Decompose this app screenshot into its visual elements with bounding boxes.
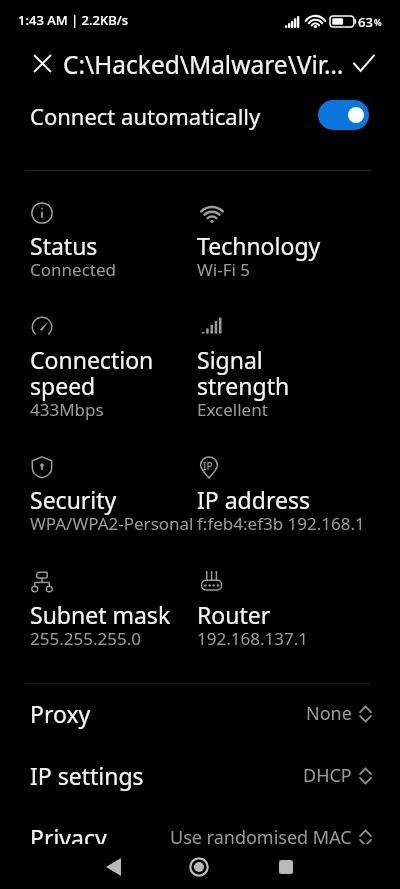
staticText: 255.255.255.0 (30, 627, 141, 650)
staticText: Connected (30, 258, 116, 281)
button[interactable]: Back (83, 844, 143, 889)
staticText: Wi-Fi 5 (197, 258, 251, 281)
staticText: strength (197, 370, 290, 401)
staticText: Signal (197, 344, 263, 375)
staticText: Connect automatically (30, 101, 261, 131)
staticText: Router (197, 599, 271, 630)
staticText: Excellent (197, 398, 268, 421)
staticText: Security (30, 484, 117, 515)
staticText: WPA/WPA2-Personal (30, 512, 194, 535)
staticText: None (306, 701, 352, 726)
staticText: IP (203, 459, 213, 473)
button[interactable]: IP settings (0, 744, 400, 806)
staticText: 1:43 AM | 2.2KB/s (18, 11, 129, 29)
button[interactable]: Privacy (0, 806, 400, 868)
button[interactable]: Save (347, 47, 379, 79)
staticText: Status (30, 230, 98, 261)
staticText: IP settings (30, 760, 144, 791)
staticText: 192.168.137.1 (197, 627, 308, 650)
staticText: 433Mbps (30, 398, 104, 421)
staticText: % (374, 16, 382, 28)
button[interactable]: Proxy (0, 682, 400, 744)
staticText: Subnet mask (30, 599, 171, 630)
staticText: Privacy (30, 822, 107, 853)
staticText: f:feb4:ef3b 192.168.1 (197, 512, 365, 535)
staticText: Technology (197, 230, 321, 261)
staticText: Proxy (30, 698, 91, 729)
staticText: DHCP (303, 763, 352, 788)
staticText: speed (30, 370, 96, 401)
button[interactable]: Recents (256, 844, 316, 889)
button[interactable]: Close (26, 47, 58, 79)
button[interactable]: Connect automatically (0, 90, 400, 140)
staticText: C:\Hacked\Malware\Vir… (63, 48, 344, 81)
button[interactable]: Home (169, 844, 229, 889)
staticText: 63 (358, 13, 373, 31)
staticText: Connection (30, 344, 154, 375)
staticText: IP address (197, 484, 310, 515)
staticText: Use randomised MAC (170, 825, 352, 850)
